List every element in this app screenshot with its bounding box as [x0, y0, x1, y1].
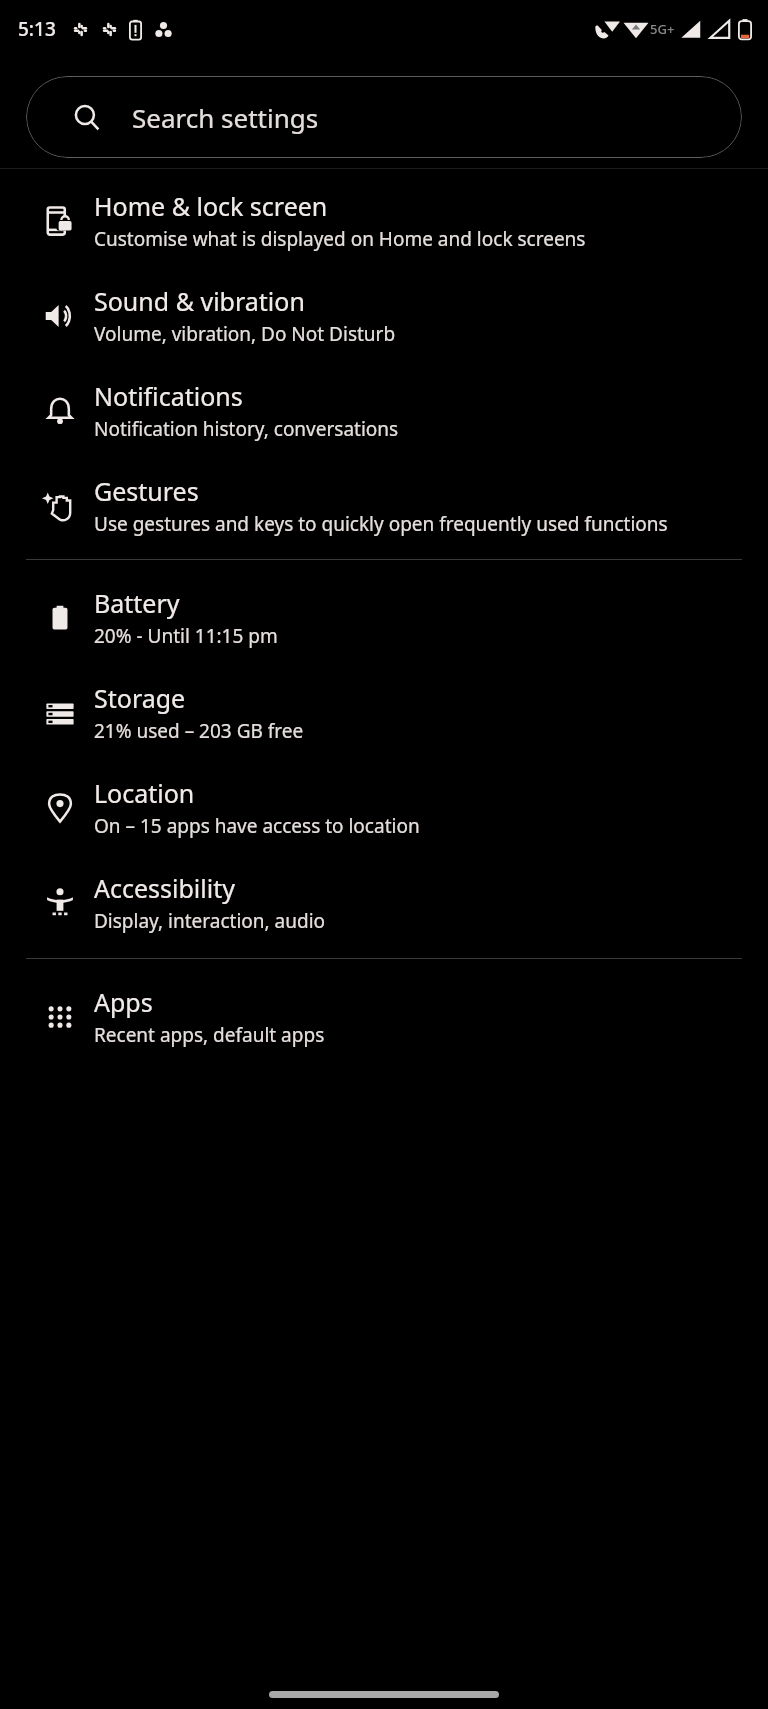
staticText: Storage — [94, 681, 186, 715]
staticText: Customise what is displayed on Home and … — [94, 226, 586, 252]
button[interactable]: Accessibility — [0, 855, 768, 958]
staticText: 20% - Until 11:15 pm — [94, 623, 278, 649]
staticText: Accessibility — [94, 871, 235, 905]
button[interactable]: Search settings — [26, 76, 742, 158]
staticText: Location — [94, 776, 195, 810]
staticText: 21% used – 203 GB free — [94, 718, 304, 744]
staticText: Search settings — [132, 100, 319, 135]
button[interactable]: Gestures — [0, 458, 768, 559]
button[interactable]: Apps — [0, 959, 768, 1056]
button[interactable]: Location — [0, 760, 768, 855]
staticText: Sound & vibration — [94, 284, 305, 318]
button[interactable]: Sound & vibration — [0, 268, 768, 363]
staticText: Volume, vibration, Do Not Disturb — [94, 321, 396, 347]
button[interactable]: Battery — [0, 560, 768, 665]
staticText: Home & lock screen — [94, 189, 328, 223]
staticText: Battery — [94, 586, 180, 620]
button[interactable]: Home & lock screen — [0, 181, 768, 268]
staticText: Recent apps, default apps — [94, 1022, 325, 1048]
staticText: Use gestures and keys to quickly open fr… — [94, 511, 668, 537]
staticText: Display, interaction, audio — [94, 908, 326, 934]
staticText: Apps — [94, 985, 153, 1019]
staticText: Notifications — [94, 379, 243, 413]
staticText: 5:13 — [18, 16, 56, 42]
staticText: On – 15 apps have access to location — [94, 813, 420, 839]
staticText: Notification history, conversations — [94, 416, 399, 442]
staticText: Gestures — [94, 474, 199, 508]
button[interactable]: Storage — [0, 665, 768, 760]
button[interactable]: Notifications — [0, 363, 768, 458]
staticText: 5G+ — [650, 20, 675, 38]
